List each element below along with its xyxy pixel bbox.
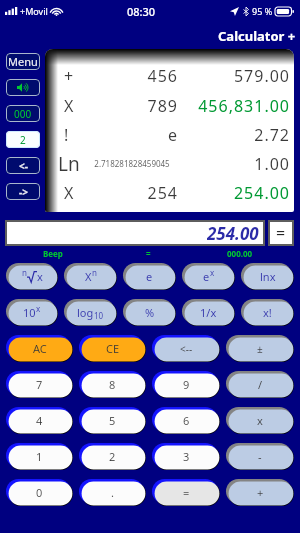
staticText: x (210, 267, 215, 278)
staticText: 2.72 (192, 124, 290, 146)
staticText: 1/x (200, 305, 217, 320)
button[interactable]: 0 (6, 479, 73, 506)
staticText: Menu (8, 54, 38, 69)
button[interactable]: 000 (6, 105, 40, 122)
button[interactable]: = (152, 479, 220, 506)
staticText: 1 (36, 449, 43, 464)
staticText: 254.00 (192, 182, 290, 204)
button[interactable]: - (226, 443, 294, 470)
button[interactable]: . (79, 479, 146, 506)
button[interactable]: ± (226, 335, 294, 362)
staticText: 8 (109, 377, 116, 392)
staticText: e (146, 269, 153, 284)
staticText: lnx (260, 269, 276, 284)
staticText: 6 (183, 413, 190, 428)
staticText: ! (64, 124, 83, 146)
button[interactable]: e (123, 263, 176, 290)
staticText: ± (257, 342, 263, 356)
staticText: x (257, 413, 263, 428)
staticText: = (276, 222, 286, 244)
button[interactable]: x (226, 407, 294, 434)
button[interactable]: Sound (6, 79, 40, 96)
staticText: x! (263, 305, 272, 320)
staticText: + (257, 485, 264, 500)
button[interactable]: log (64, 299, 117, 326)
button[interactable]: 6 (152, 407, 220, 434)
button[interactable]: + (226, 479, 294, 506)
staticText: 2 (109, 449, 116, 464)
button[interactable]: 8 (79, 371, 146, 398)
staticText: Ln (58, 151, 86, 177)
button[interactable]: e (182, 263, 235, 290)
staticText: e (203, 269, 210, 284)
staticText: x (36, 303, 41, 314)
staticText: 10 (23, 305, 36, 320)
staticText: CE (106, 341, 120, 356)
staticText: Calculator + (218, 27, 296, 45)
staticText: log (77, 305, 94, 320)
button[interactable]: 4 (6, 407, 73, 434)
button[interactable]: X (64, 263, 117, 290)
staticText: 0 (36, 485, 43, 500)
button[interactable]: x! (241, 299, 294, 326)
staticText: 000.00 (227, 248, 253, 259)
staticText: 3 (183, 449, 190, 464)
staticText: 7 (36, 377, 43, 392)
staticText: 456,831.00 (192, 95, 290, 117)
button[interactable]: CE (79, 335, 146, 362)
button[interactable]: = (270, 222, 292, 244)
staticText: / (258, 377, 263, 392)
button[interactable]: % (123, 299, 176, 326)
staticText: 2.718281828459045 (86, 158, 178, 169)
button[interactable]: -> (6, 183, 40, 200)
staticText: 5 (109, 413, 116, 428)
button[interactable]: lnx (241, 263, 294, 290)
staticText: 95 % (252, 5, 273, 17)
button[interactable]: 1 (6, 443, 73, 470)
button[interactable]: / (226, 371, 294, 398)
button[interactable]: 7 (6, 371, 73, 398)
staticText: <-- (180, 342, 193, 356)
staticText: % (145, 305, 155, 320)
staticText: 10 (94, 310, 104, 321)
staticText: 254 (83, 182, 178, 204)
button[interactable]: Menu (6, 53, 40, 70)
button[interactable]: 2 (6, 131, 40, 148)
staticText: 789 (83, 95, 178, 117)
button[interactable]: <- (6, 157, 40, 174)
staticText: = (183, 485, 190, 500)
staticText: + (64, 65, 83, 87)
button[interactable]: 1/x (182, 299, 235, 326)
staticText: x (37, 269, 43, 284)
button[interactable]: AC (6, 335, 73, 362)
staticText: -> (19, 185, 28, 199)
staticText: 1.00 (192, 153, 290, 175)
button[interactable]: n (6, 263, 58, 290)
button[interactable]: <-- (152, 335, 220, 362)
staticText: = (146, 248, 151, 259)
staticText: e (83, 124, 178, 146)
staticText: Beep (43, 248, 63, 259)
button[interactable]: 10 (6, 299, 58, 326)
staticText: AC (33, 341, 47, 356)
staticText: X (64, 182, 83, 204)
button[interactable]: 3 (152, 443, 220, 470)
staticText: n (92, 267, 97, 278)
staticText: 254.00 (207, 222, 259, 244)
staticText: X (85, 269, 92, 284)
staticText: X (64, 95, 83, 117)
staticText: 2 (20, 133, 26, 147)
staticText: - (258, 449, 262, 464)
button[interactable]: 5 (79, 407, 146, 434)
staticText: <- (19, 159, 28, 173)
staticText: 9 (183, 377, 190, 392)
staticText: +Movil (20, 5, 48, 17)
staticText: 579.00 (192, 65, 290, 87)
button[interactable]: 2 (79, 443, 146, 470)
staticText: 000 (14, 107, 32, 121)
staticText: n (22, 267, 27, 278)
staticText: 08:30 (127, 4, 156, 19)
staticText: 4 (36, 413, 43, 428)
button[interactable]: 9 (152, 371, 220, 398)
staticText: . (111, 485, 114, 500)
